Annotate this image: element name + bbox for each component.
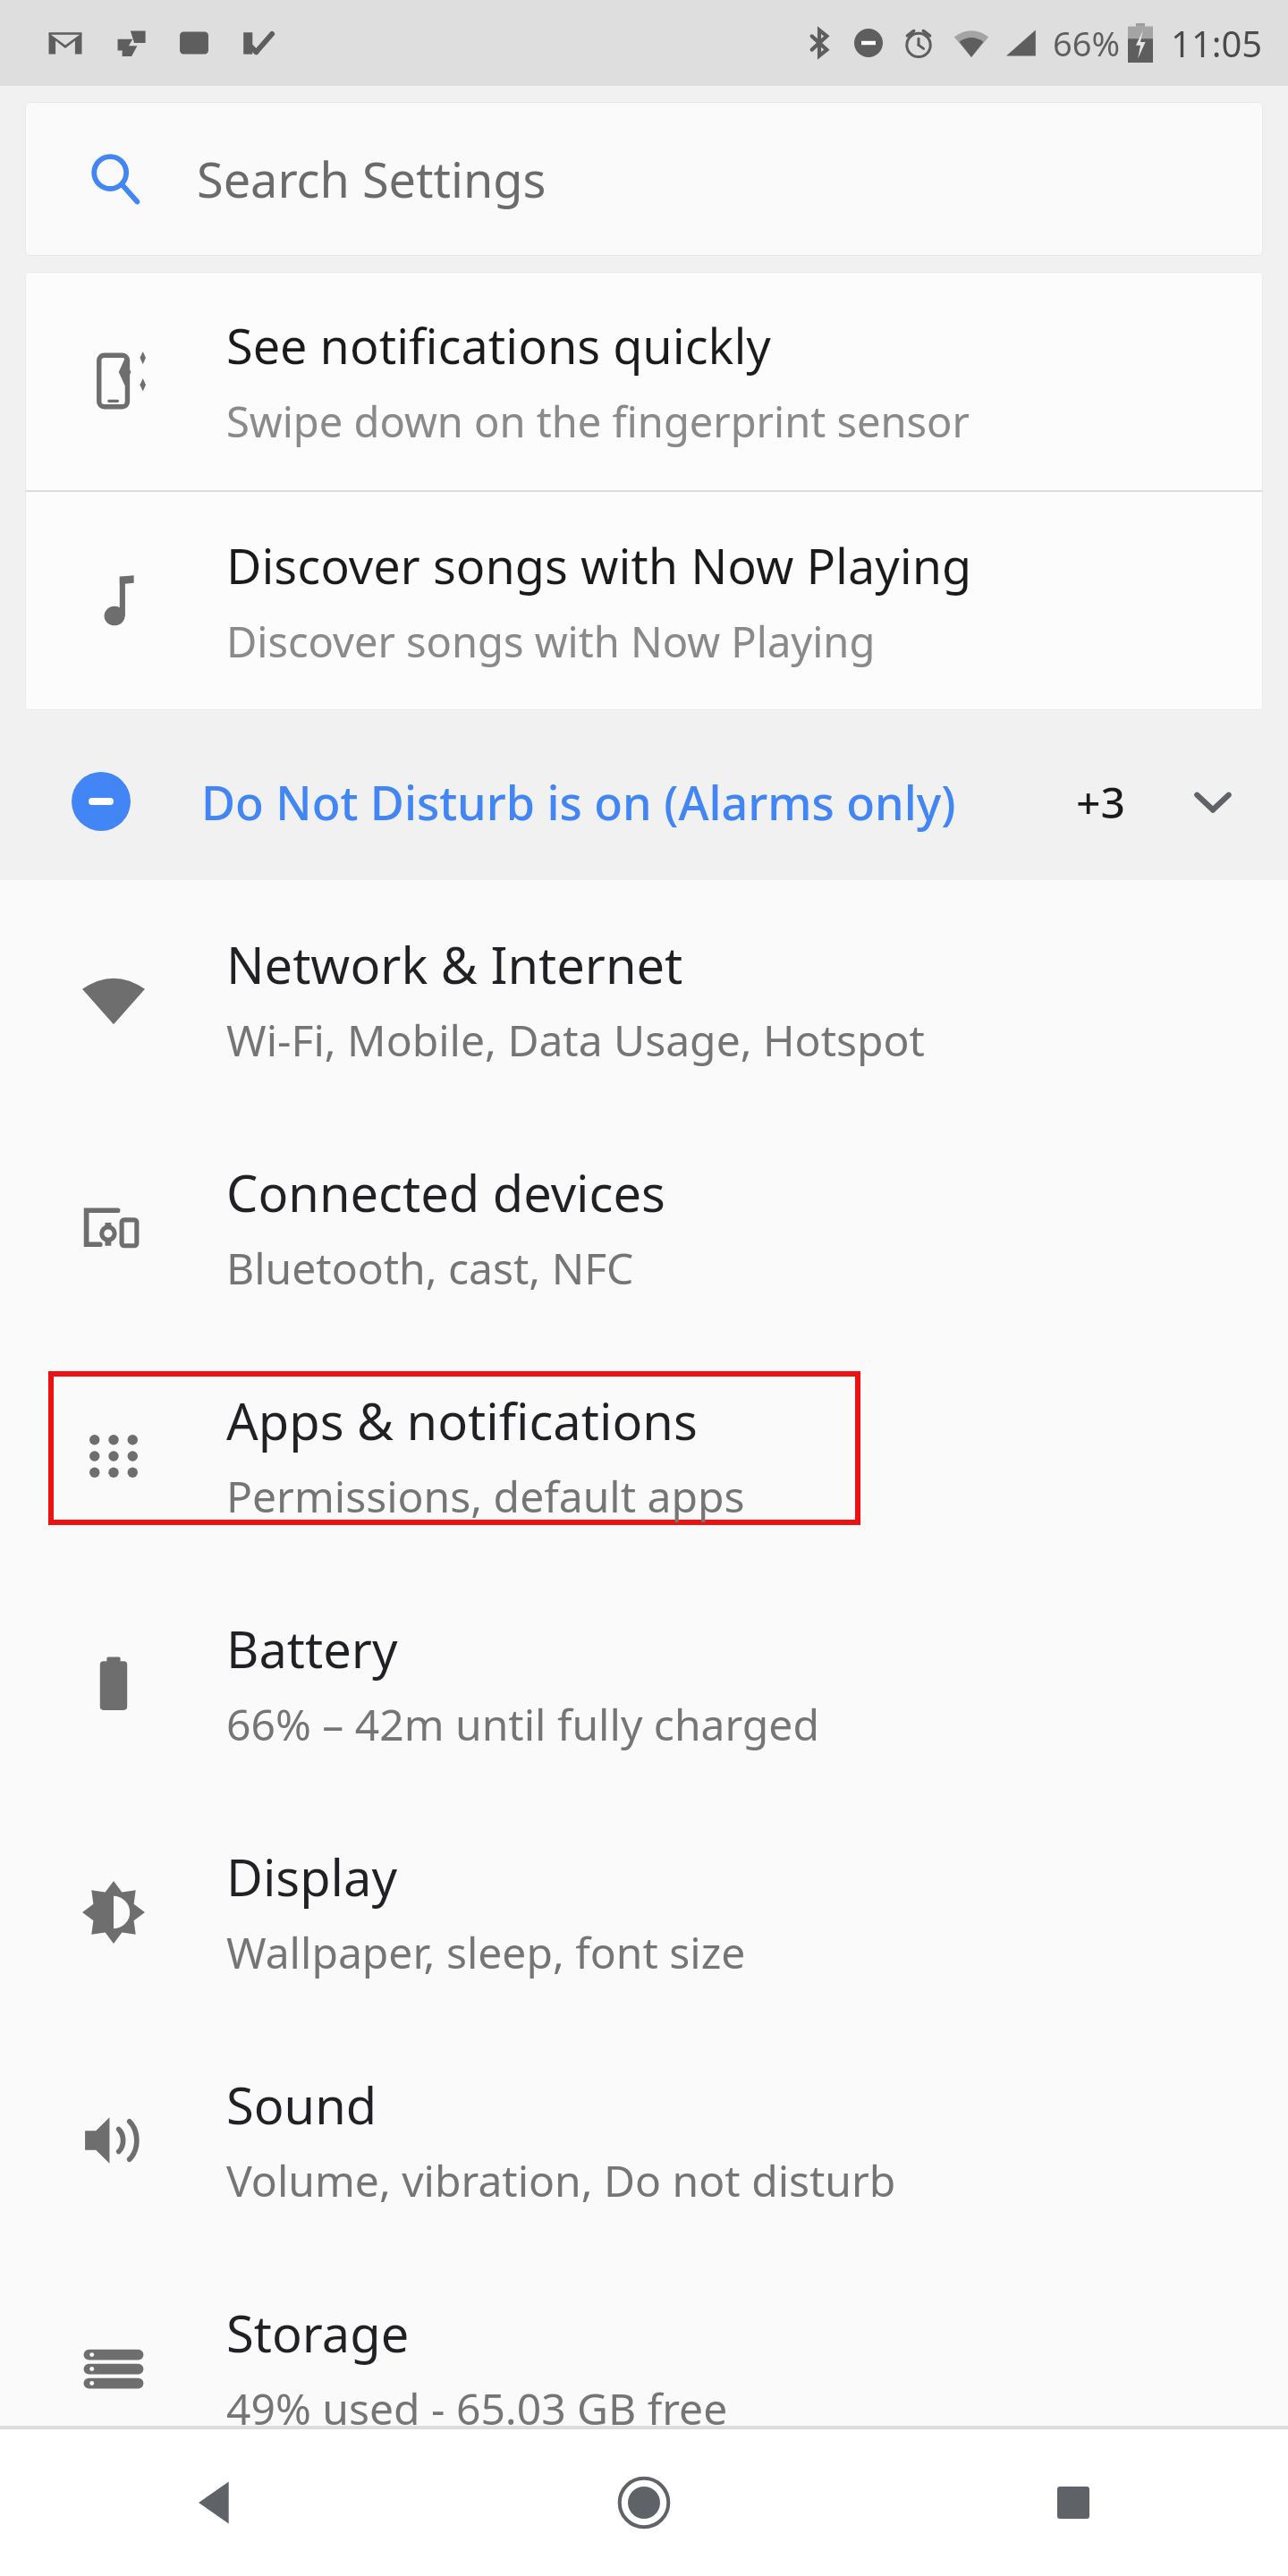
staticText: 66% (1053, 20, 1121, 66)
button[interactable]: Search Settings (25, 102, 1263, 256)
staticText: Connected devices (226, 1158, 665, 1226)
staticText: Swipe down on the fingerprint sensor (226, 393, 970, 450)
staticText: Discover songs with Now Playing (226, 613, 876, 670)
staticText: Search Settings (197, 146, 547, 212)
staticText: Bluetooth, cast, NFC (226, 1239, 634, 1297)
button[interactable]: Expand (1181, 769, 1245, 834)
staticText: Battery (226, 1614, 398, 1682)
button[interactable]: Network & Internet (0, 885, 1288, 1114)
staticText: Display (226, 1843, 398, 1911)
button[interactable]: Recent apps (859, 2429, 1288, 2576)
button[interactable]: Apps & notifications (0, 1342, 1288, 1570)
staticText: 66% – 42m until fully charged (226, 1695, 819, 1753)
staticText: Apps & notifications (226, 1386, 698, 1454)
button[interactable]: Do Not Disturb is on (Alarms only) (0, 723, 1288, 880)
button[interactable]: Display (0, 1798, 1288, 2026)
staticText: Do Not Disturb is on (Alarms only) (201, 770, 956, 834)
button[interactable]: Sound (0, 2026, 1288, 2254)
staticText: Sound (226, 2071, 377, 2139)
button[interactable]: Storage (0, 2254, 1288, 2482)
staticText: Wallpaper, sleep, font size (226, 1923, 746, 1981)
staticText: 11:05 (1171, 19, 1263, 67)
staticText: See notifications quickly (226, 312, 771, 378)
button[interactable]: Battery (0, 1570, 1288, 1798)
button[interactable]: Discover songs with Now Playing (25, 492, 1263, 710)
staticText: Discover songs with Now Playing (226, 532, 972, 598)
staticText: Volume, vibration, Do not disturb (226, 2151, 896, 2209)
staticText: Storage (226, 2299, 410, 2367)
staticText: +3 (1076, 773, 1125, 831)
button[interactable]: Connected devices (0, 1114, 1288, 1342)
staticText: Permissions, default apps (226, 1467, 745, 1525)
staticText: Wi-Fi, Mobile, Data Usage, Hotspot (226, 1011, 925, 1069)
button[interactable]: See notifications quickly (25, 272, 1263, 490)
button[interactable]: Back (0, 2429, 429, 2576)
staticText: Network & Internet (226, 930, 683, 998)
button[interactable]: Home (429, 2429, 859, 2576)
staticText: 49% used - 65.03 GB free (226, 2379, 728, 2437)
